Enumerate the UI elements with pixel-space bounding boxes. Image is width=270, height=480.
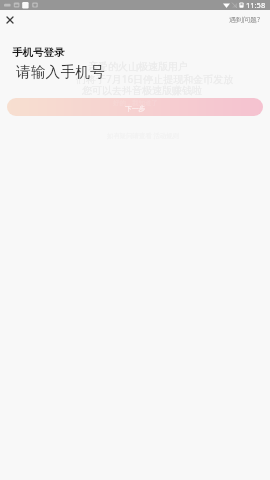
staticText: 亲爱的火山极速版用户 — [88, 60, 188, 73]
staticText: 们将于7月16日停止提现和金币发放 — [76, 72, 234, 86]
staticText: 遇到问题? — [229, 15, 261, 25]
staticText: 好的，我知道了 — [113, 99, 158, 107]
button[interactable]: 请输入手机号 — [0, 62, 270, 82]
staticText: 您可以去抖音极速版赚钱啦 — [82, 84, 202, 97]
button[interactable]: 好的，我知道了 — [7, 98, 263, 116]
staticText: 请输入手机号 — [16, 63, 105, 82]
staticText: 手机号登录 — [12, 46, 65, 59]
button[interactable]: 遇到问题? — [229, 15, 261, 25]
staticText: 下一步 — [125, 104, 146, 113]
button[interactable]: Close — [0, 10, 20, 30]
staticText: 11:58 — [246, 0, 266, 10]
